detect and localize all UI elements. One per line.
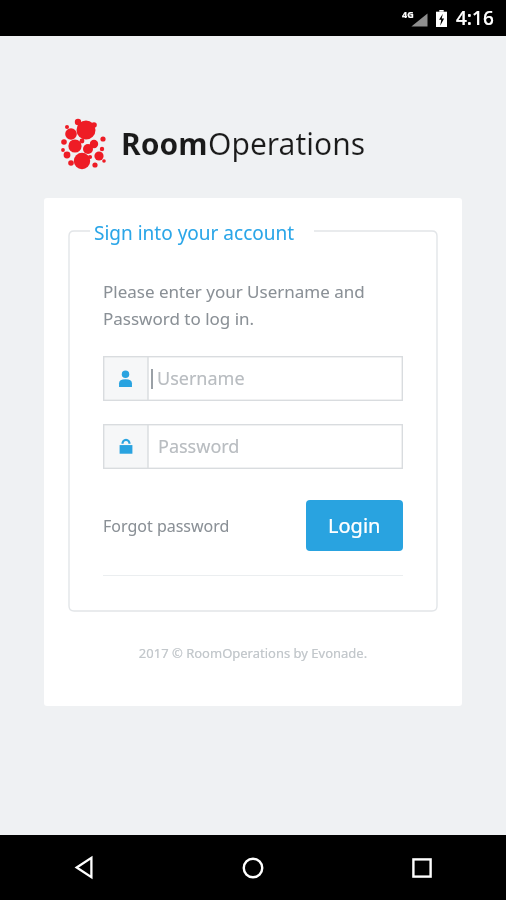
staticText: Operations: [208, 123, 366, 164]
staticText: Forgot password: [103, 515, 230, 537]
staticText: Please enter your Username and Password …: [103, 280, 365, 330]
button[interactable]: Forgot password: [103, 507, 230, 545]
button[interactable]: Login: [306, 500, 403, 551]
other: Username: [117, 370, 134, 387]
staticText: Username: [157, 366, 245, 391]
staticText: 4:16: [456, 5, 494, 31]
other: Password: [118, 439, 134, 455]
button[interactable]: Username: [103, 356, 403, 401]
staticText: Sign into your account: [94, 220, 295, 246]
button[interactable]: Home: [168, 835, 337, 900]
staticText: 2017 © RoomOperations by Evonade.: [68, 644, 438, 662]
staticText: 4G: [402, 8, 414, 20]
button[interactable]: Password: [103, 424, 403, 469]
button[interactable]: Recent apps: [337, 835, 506, 900]
staticText: Login: [328, 512, 381, 539]
staticText: Password: [158, 434, 240, 459]
staticText: Room: [121, 123, 208, 164]
button[interactable]: Back: [0, 835, 168, 900]
